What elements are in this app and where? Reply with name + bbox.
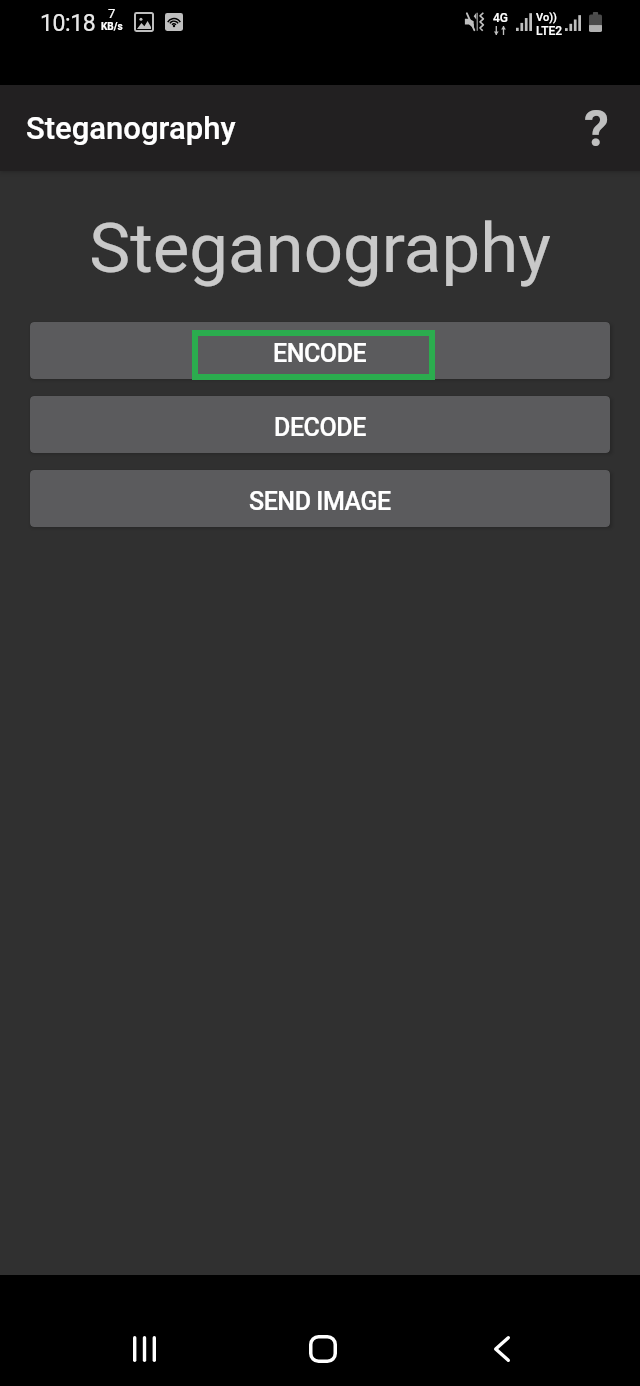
- button[interactable]: ENCODE: [30, 322, 610, 379]
- staticText: ?: [584, 100, 609, 159]
- staticText: 10:18: [40, 10, 96, 37]
- staticText: LTE2: [536, 24, 563, 38]
- staticText: SEND IMAGE: [249, 487, 391, 516]
- button[interactable]: Recents: [108, 1313, 180, 1385]
- staticText: ENCODE: [273, 339, 367, 368]
- staticText: DECODE: [274, 413, 366, 442]
- staticText: KB/s: [101, 21, 123, 33]
- button[interactable]: SEND IMAGE: [30, 470, 610, 527]
- staticText: Steganography: [0, 208, 640, 289]
- staticText: Vo)): [536, 11, 557, 24]
- button[interactable]: DECODE: [30, 396, 610, 453]
- button[interactable]: Help: [560, 94, 628, 162]
- button[interactable]: Back: [466, 1313, 538, 1385]
- staticText: Steganography: [26, 110, 236, 146]
- staticText: 7: [108, 6, 116, 21]
- staticText: 4G: [493, 11, 508, 25]
- button[interactable]: Home: [287, 1313, 359, 1385]
